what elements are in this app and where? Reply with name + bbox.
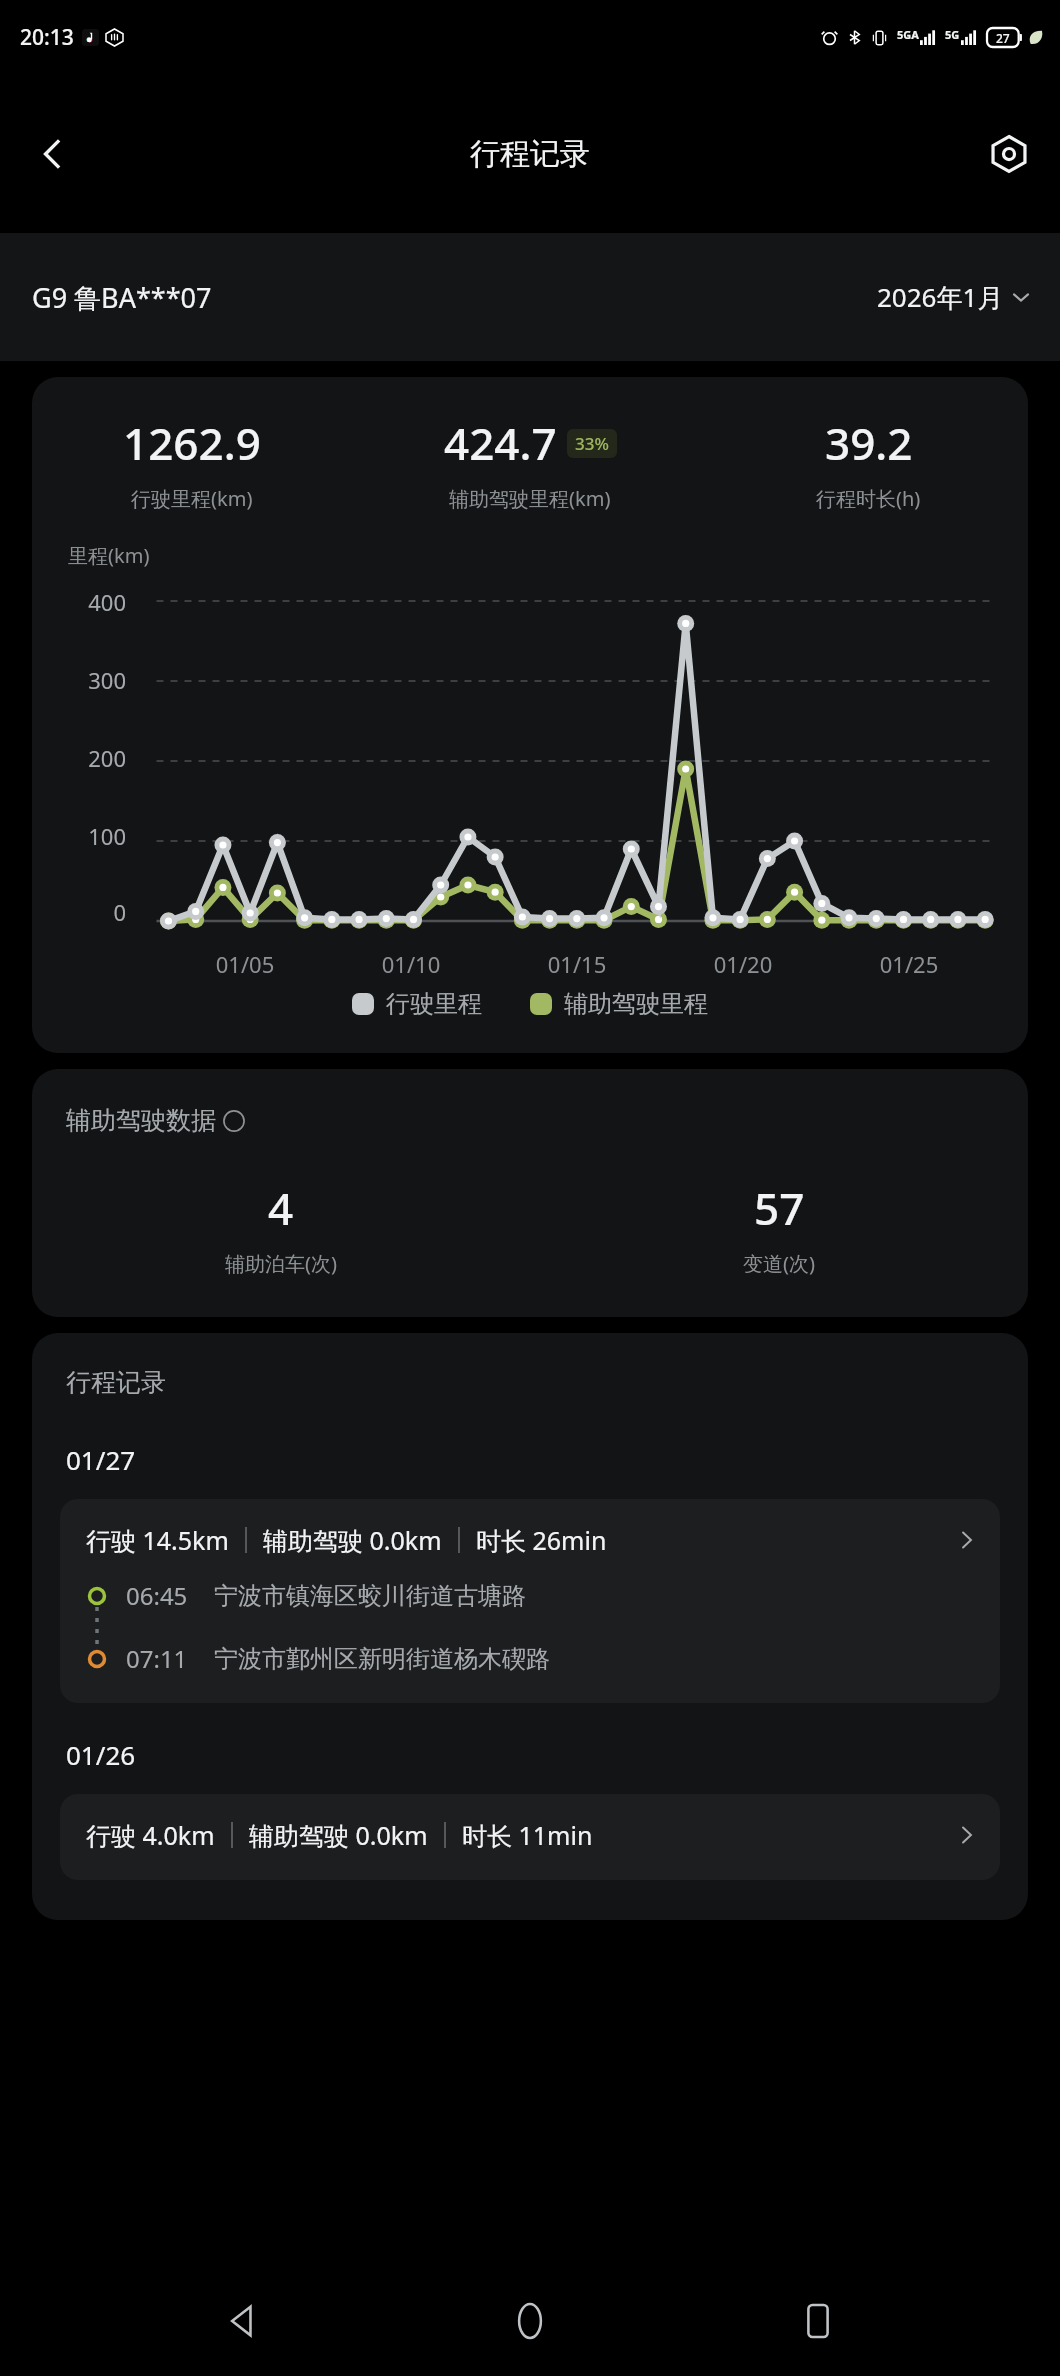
staticText: 200: [32, 743, 126, 773]
staticText: 4: [268, 1178, 294, 1238]
staticText: 5G: [945, 27, 960, 42]
staticText: 行驶 4.0km: [86, 1818, 215, 1852]
staticText: 400: [32, 587, 126, 617]
staticText: 01/15: [494, 949, 660, 979]
button[interactable]: Back: [24, 125, 82, 183]
staticText: 20:13: [20, 23, 74, 52]
staticText: 1262.9: [123, 413, 261, 473]
staticText: 424.7: [444, 413, 557, 473]
staticText: 06:45: [126, 1579, 188, 1612]
button[interactable]: 辅助驾驶数据: [66, 1105, 246, 1136]
staticText: 07:11: [126, 1642, 188, 1675]
staticText: 时长 11min: [462, 1818, 593, 1852]
button[interactable]: Back: [198, 2276, 288, 2366]
staticText: 辅助驾驶数据: [66, 1105, 216, 1136]
staticText: 行驶里程: [386, 989, 482, 1019]
staticText: 01/10: [328, 949, 494, 979]
button[interactable]: 行驶 14.5km: [60, 1499, 1000, 1703]
staticText: 行驶 14.5km: [86, 1523, 229, 1557]
staticText: 57: [754, 1178, 805, 1238]
staticText: 宁波市镇海区蛟川街道古塘路: [214, 1581, 526, 1611]
staticText: 辅助驾驶里程(km): [449, 485, 611, 512]
staticText: 行驶里程(km): [131, 485, 253, 512]
staticText: 里程(km): [68, 542, 150, 569]
staticText: G9 鲁BA***07: [32, 279, 212, 316]
staticText: 时长 26min: [476, 1523, 607, 1557]
staticText: 01/27: [66, 1442, 136, 1477]
staticText: 300: [32, 665, 126, 695]
staticText: 01/20: [660, 949, 826, 979]
button[interactable]: Settings: [980, 125, 1038, 183]
button[interactable]: 行驶 4.0km: [60, 1794, 1000, 1880]
staticText: 宁波市鄞州区新明街道杨木碶路: [214, 1644, 550, 1674]
staticText: 变道(次): [743, 1250, 815, 1277]
staticText: 0: [32, 897, 126, 927]
staticText: 27: [996, 30, 1010, 46]
staticText: 2026年1月: [877, 279, 1004, 315]
staticText: 辅助驾驶 0.0km: [263, 1523, 442, 1557]
staticText: 100: [32, 821, 126, 851]
staticText: 行程记录: [66, 1367, 166, 1398]
staticText: 01/26: [66, 1737, 136, 1772]
staticText: 01/05: [162, 949, 328, 979]
button[interactable]: Home: [485, 2276, 575, 2366]
staticText: 行程时长(h): [816, 485, 921, 512]
button[interactable]: 行驶里程: [352, 989, 482, 1019]
button[interactable]: 2026年1月: [877, 279, 1032, 315]
staticText: 01/25: [826, 949, 992, 979]
button[interactable]: 辅助驾驶里程: [530, 989, 708, 1019]
staticText: 39.2: [825, 413, 913, 473]
staticText: 33%: [575, 432, 609, 455]
staticText: 行程记录: [470, 135, 590, 173]
staticText: 辅助驾驶 0.0km: [249, 1818, 428, 1852]
staticText: 5GA: [897, 27, 919, 42]
staticText: 辅助驾驶里程: [564, 989, 708, 1019]
button[interactable]: Recents: [773, 2276, 863, 2366]
staticText: 辅助泊车(次): [225, 1250, 337, 1277]
